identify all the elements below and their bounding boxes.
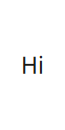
staticText: Hi [21,50,44,80]
